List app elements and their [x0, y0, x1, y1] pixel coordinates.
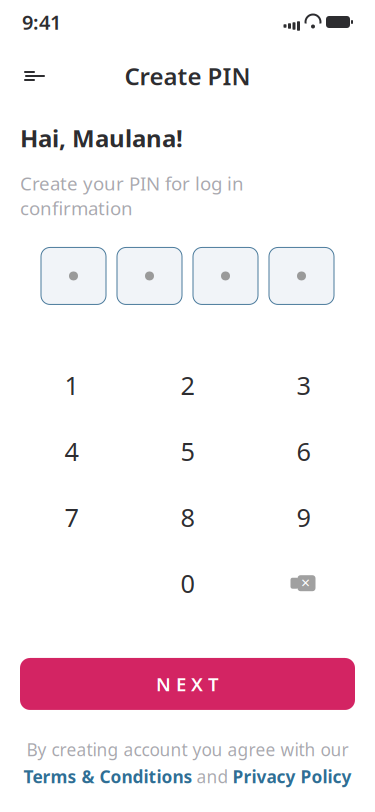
- button[interactable]: Terms & Conditions: [23, 765, 192, 788]
- staticText: 9:41: [22, 9, 61, 35]
- staticText: 6: [296, 434, 310, 468]
- staticText: 0: [180, 566, 194, 600]
- staticText: By creating account you agree with our: [26, 738, 348, 761]
- staticText: 4: [64, 434, 78, 468]
- staticText: 5: [180, 434, 194, 468]
- staticText: Create PIN: [124, 60, 250, 92]
- staticText: N E X T: [156, 672, 219, 696]
- staticText: 2: [180, 368, 194, 402]
- staticText: 9: [296, 500, 310, 534]
- button[interactable]: 2: [129, 352, 245, 418]
- button[interactable]: 4: [13, 418, 129, 484]
- staticText: Privacy Policy: [232, 765, 351, 788]
- staticText: Create your PIN for log in confirmation: [20, 171, 244, 220]
- staticText: 1: [64, 368, 78, 402]
- button[interactable]: 7: [13, 484, 129, 550]
- staticText: Terms & Conditions: [23, 765, 192, 788]
- button[interactable]: 6: [245, 418, 361, 484]
- staticText: 3: [296, 368, 310, 402]
- button[interactable]: 9: [245, 484, 361, 550]
- button[interactable]: Privacy Policy: [232, 765, 351, 788]
- button[interactable]: 5: [129, 418, 245, 484]
- button[interactable]: 8: [129, 484, 245, 550]
- button[interactable]: 3: [245, 352, 361, 418]
- button[interactable]: Back: [13, 54, 57, 98]
- button[interactable]: 0: [129, 550, 245, 616]
- button[interactable]: Delete: [245, 550, 361, 616]
- staticText: ✕: [300, 576, 310, 590]
- staticText: 7: [64, 500, 78, 534]
- button[interactable]: N E X T: [20, 658, 355, 710]
- button[interactable]: 1: [13, 352, 129, 418]
- staticText: Hai, Maulana!: [20, 122, 183, 154]
- staticText: 8: [180, 500, 194, 534]
- staticText: and: [196, 765, 228, 788]
